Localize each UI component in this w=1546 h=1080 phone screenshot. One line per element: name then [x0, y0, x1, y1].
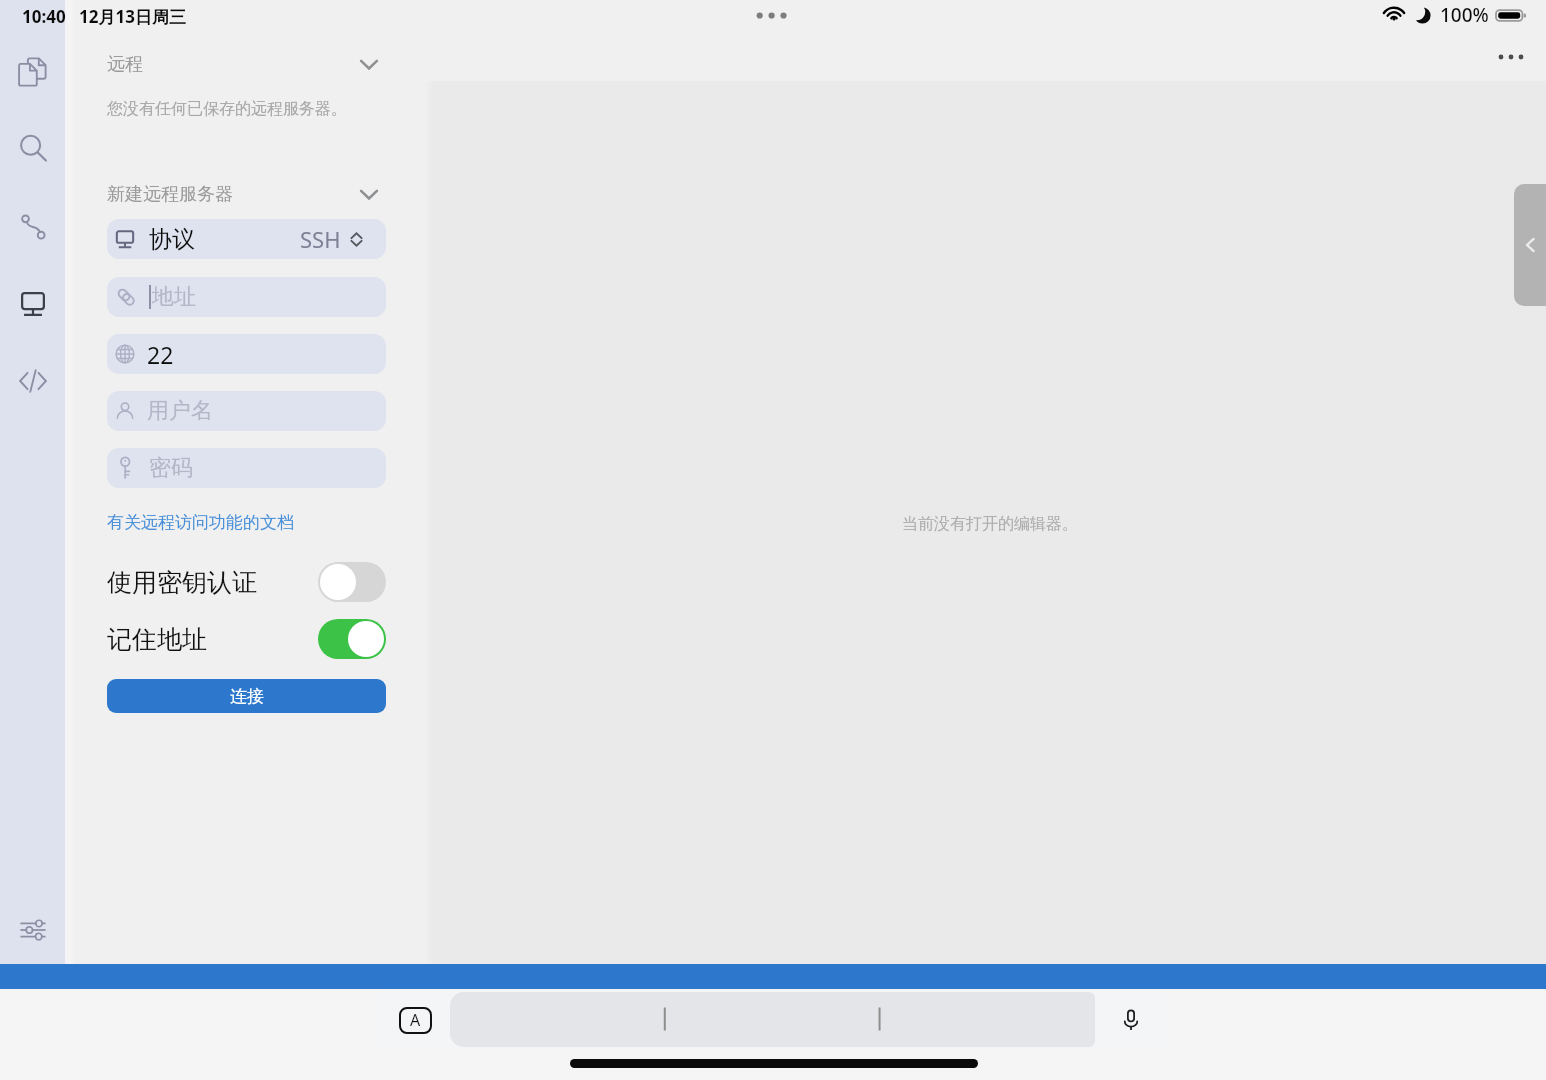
staticText: 新建远程服务器 — [107, 183, 233, 206]
button[interactable]: 协议 — [107, 219, 386, 259]
staticText: 地址 — [152, 283, 196, 311]
staticText: 您没有任何已保存的远程服务器。 — [107, 99, 347, 119]
staticText: 远程 — [107, 53, 143, 76]
button[interactable]: 远程 — [107, 50, 386, 78]
staticText: 12月13日周三 — [79, 5, 186, 28]
button[interactable]: Remote — [10, 281, 56, 327]
staticText: 100% — [1440, 2, 1489, 28]
button[interactable]: More options — [1494, 40, 1528, 74]
staticText: 当前没有打开的编辑器。 — [902, 514, 1078, 534]
staticText: 记住地址 — [107, 624, 207, 655]
button[interactable]: 使用密钥认证 — [107, 560, 386, 604]
button[interactable]: Source control — [10, 204, 56, 250]
button[interactable]: 记住地址 — [107, 617, 386, 661]
staticText: 10:40 — [22, 5, 66, 28]
button[interactable]: 有关远程访问功能的文档 — [107, 512, 294, 533]
button[interactable]: 22 — [107, 334, 386, 374]
button[interactable]: 用户名 — [107, 391, 386, 431]
button[interactable]: 新建远程服务器 — [107, 180, 386, 208]
staticText: 密码 — [149, 454, 193, 482]
button[interactable]: Input language — [397, 1004, 433, 1036]
button[interactable]: Search — [10, 125, 56, 171]
button[interactable]: 连接 — [107, 679, 386, 713]
staticText: SSH — [300, 224, 341, 254]
staticText: A — [410, 1009, 421, 1031]
button[interactable]: Open panel — [1514, 184, 1546, 306]
staticText: 有关远程访问功能的文档 — [107, 512, 294, 533]
button[interactable]: Voice input — [1112, 1001, 1150, 1039]
button[interactable]: 密码 — [107, 448, 386, 488]
button[interactable]: Settings — [10, 907, 56, 953]
staticText: 用户名 — [147, 397, 213, 425]
button[interactable]: Files — [10, 49, 56, 95]
staticText: 使用密钥认证 — [107, 567, 257, 598]
staticText: 连接 — [230, 686, 264, 707]
staticText: 协议 — [149, 225, 195, 254]
button[interactable]: Extensions — [10, 358, 56, 404]
staticText: 22 — [147, 339, 174, 370]
button[interactable]: 地址 — [107, 277, 386, 317]
button[interactable]: Space — [450, 992, 1095, 1047]
